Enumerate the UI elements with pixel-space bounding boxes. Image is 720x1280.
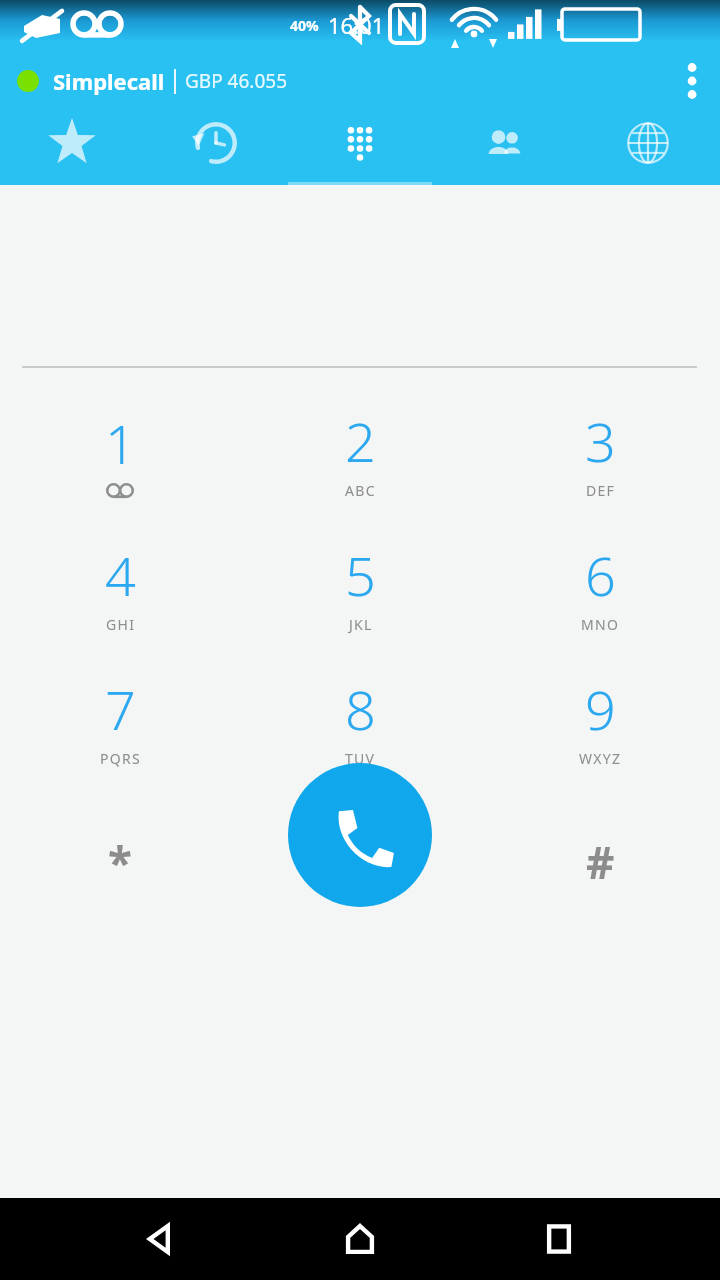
button[interactable]: 8 bbox=[240, 653, 480, 787]
staticText: MNO bbox=[581, 615, 620, 634]
staticText: 40% bbox=[290, 16, 319, 35]
button[interactable]: 0 bbox=[240, 787, 480, 921]
button[interactable]: International bbox=[576, 110, 720, 185]
button[interactable]: Home bbox=[322, 1201, 398, 1277]
staticText: GBP 46.055 bbox=[185, 68, 288, 94]
staticText: # bbox=[586, 832, 615, 892]
staticText: 2 bbox=[345, 404, 376, 478]
button[interactable]: * bbox=[0, 787, 240, 921]
staticText: 8 bbox=[345, 672, 376, 746]
staticText: Simplecall bbox=[53, 66, 165, 96]
staticText: 5 bbox=[345, 538, 376, 612]
staticText: 3 bbox=[585, 404, 616, 478]
staticText: 16:01 bbox=[328, 10, 385, 40]
staticText: 9 bbox=[585, 672, 616, 746]
button[interactable]: 9 bbox=[480, 653, 720, 787]
button[interactable]: Call bbox=[288, 763, 432, 907]
staticText: TUV bbox=[345, 749, 376, 768]
staticText: PQRS bbox=[100, 749, 141, 768]
staticText: DEF bbox=[586, 481, 616, 500]
staticText: * bbox=[108, 832, 132, 892]
staticText: 7 bbox=[105, 672, 136, 746]
button[interactable]: # bbox=[480, 787, 720, 921]
staticText: 0 bbox=[345, 805, 376, 879]
button[interactable]: More options bbox=[658, 52, 720, 110]
button[interactable]: Back bbox=[123, 1201, 199, 1277]
button[interactable]: Contacts bbox=[432, 110, 576, 185]
button[interactable]: 1 bbox=[0, 385, 240, 519]
button[interactable]: 6 bbox=[480, 519, 720, 653]
staticText: 4 bbox=[105, 538, 136, 612]
button[interactable]: Recents bbox=[521, 1201, 597, 1277]
staticText: 1 bbox=[105, 406, 136, 480]
button[interactable]: Recents bbox=[144, 110, 288, 185]
button[interactable]: 2 bbox=[240, 385, 480, 519]
button[interactable]: 3 bbox=[480, 385, 720, 519]
button[interactable]: 7 bbox=[0, 653, 240, 787]
button[interactable]: 5 bbox=[240, 519, 480, 653]
staticText: ABC bbox=[345, 481, 376, 500]
staticText: 6 bbox=[585, 538, 616, 612]
button[interactable]: 4 bbox=[0, 519, 240, 653]
button[interactable]: Dialpad bbox=[288, 110, 432, 185]
staticText: GHI bbox=[106, 615, 136, 634]
button[interactable]: Favourites bbox=[0, 110, 144, 185]
staticText: WXYZ bbox=[579, 749, 622, 768]
staticText: JKL bbox=[349, 615, 373, 634]
